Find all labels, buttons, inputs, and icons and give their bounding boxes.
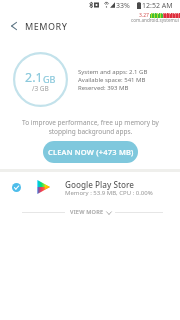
staticText: Available space: 541 MB bbox=[78, 76, 146, 84]
staticText: Google Play Store bbox=[65, 179, 135, 190]
staticText: 12:52 AM bbox=[142, 1, 173, 11]
staticText: Memory : 53.9 MB, CPU : 0.00% bbox=[65, 189, 153, 197]
staticText: com.android.systemui bbox=[131, 17, 179, 23]
staticText: MEMORY bbox=[25, 20, 68, 32]
staticText: /3 GB bbox=[32, 84, 49, 93]
staticText: Reserved: 393 MB bbox=[78, 84, 129, 92]
staticText: System and apps: 2.1 GB bbox=[78, 68, 148, 76]
staticText: 2.1 bbox=[25, 69, 43, 86]
button[interactable]: Google Play Store bbox=[0, 174, 180, 202]
staticText: 3.27 bbox=[139, 12, 149, 19]
button[interactable]: CLEAN NOW (+473 MB) bbox=[43, 141, 138, 163]
staticText: 33% bbox=[116, 1, 130, 11]
staticText: GB bbox=[43, 73, 56, 85]
button[interactable]: Back bbox=[5, 17, 23, 35]
button[interactable]: VIEW MORE bbox=[0, 206, 180, 218]
staticText: CLEAN NOW (+473 MB) bbox=[48, 147, 134, 157]
staticText: VIEW MORE bbox=[70, 208, 104, 216]
staticText: To improve performance, free up memory b… bbox=[22, 118, 159, 136]
